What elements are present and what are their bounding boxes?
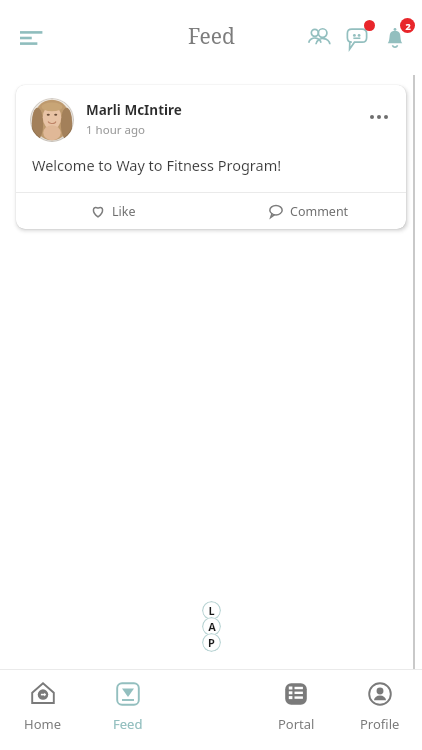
staticText: L (208, 603, 215, 618)
staticText: A (208, 619, 216, 634)
button[interactable]: Comment (211, 193, 406, 229)
button[interactable]: More options (362, 100, 396, 134)
staticText: 1 hour ago (86, 122, 145, 138)
staticText: Portal (278, 715, 315, 733)
staticText: Welcome to Way to Fitness Program! (32, 155, 282, 175)
staticText: P (208, 635, 215, 650)
button[interactable]: Home (0, 675, 85, 745)
staticText: Home (24, 715, 61, 733)
button[interactable]: Like (16, 193, 211, 229)
staticText: 2 (405, 20, 411, 32)
button[interactable]: Friends (300, 19, 338, 57)
staticText: Profile (360, 715, 400, 733)
button[interactable]: Profile (338, 675, 422, 745)
staticText: Comment (290, 203, 349, 220)
staticText: Marli McIntire (86, 101, 182, 119)
button[interactable]: Messages (338, 19, 376, 57)
button[interactable]: Menu (10, 16, 54, 60)
staticText: Feed (188, 22, 235, 51)
button[interactable]: LAP (194, 601, 228, 658)
staticText: Like (112, 203, 136, 220)
staticText: Feed (113, 715, 143, 733)
button[interactable]: Notifications (376, 19, 414, 57)
button[interactable]: Feed (85, 675, 170, 745)
button[interactable]: Portal (254, 675, 338, 745)
button[interactable]: Marli McIntire (16, 85, 406, 229)
